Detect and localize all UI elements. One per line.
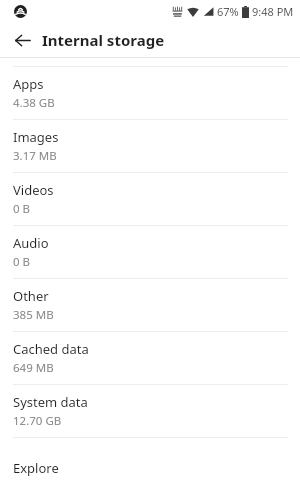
staticText: 12.70 GB (13, 413, 62, 429)
staticText: Images (13, 128, 59, 146)
button[interactable]: Videos (0, 173, 300, 225)
staticText: 385 MB (13, 307, 54, 323)
staticText: Explore (13, 459, 59, 477)
staticText: 4.38 GB (13, 95, 55, 111)
button[interactable]: System data (0, 385, 300, 437)
staticText: Videos (13, 181, 54, 199)
staticText: 649 MB (13, 360, 54, 376)
staticText: Cached data (13, 340, 89, 358)
staticText: System data (13, 393, 88, 411)
staticText: Other (13, 287, 49, 305)
button[interactable]: Apps (0, 67, 300, 119)
staticText: 0 B (13, 254, 31, 270)
staticText: 67% (217, 4, 239, 19)
button[interactable]: Images (0, 120, 300, 172)
button[interactable]: Audio (0, 226, 300, 278)
button[interactable]: Cached data (0, 332, 300, 384)
staticText: 3.17 MB (13, 148, 57, 164)
button[interactable]: Other (0, 279, 300, 331)
staticText: Apps (13, 75, 44, 93)
staticText: Internal storage (42, 30, 165, 50)
staticText: 0 B (13, 201, 31, 217)
button[interactable]: Back (8, 26, 36, 54)
button[interactable]: Explore (0, 448, 300, 488)
staticText: 9:48 PM (252, 4, 294, 19)
staticText: Audio (13, 234, 49, 252)
